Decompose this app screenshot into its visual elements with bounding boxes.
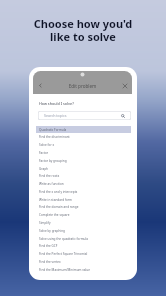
staticText: Factor: [39, 151, 49, 155]
button[interactable]: Find the domain and range: [33, 203, 132, 211]
staticText: Find the GCF: [39, 244, 58, 248]
button[interactable]: Solve using the quadratic formula: [33, 235, 132, 243]
button[interactable]: Find the x and y intercepts: [33, 188, 132, 196]
button[interactable]: Simplify: [33, 219, 132, 227]
button[interactable]: Solve for x: [33, 141, 132, 149]
button[interactable]: Back: [33, 81, 47, 90]
button[interactable]: Solve by graphing: [33, 227, 132, 235]
staticText: Find the roots: [39, 174, 60, 178]
staticText: Find the Perfect Square Trinomial: [39, 252, 88, 256]
button[interactable]: Write as function: [33, 180, 132, 188]
staticText: Edit problem: [47, 83, 118, 89]
button[interactable]: Find the discriminant: [33, 133, 132, 141]
staticText: Find the vertex: [39, 260, 61, 264]
staticText: Find the x and y intercepts: [39, 190, 78, 194]
staticText: Search topics: [44, 113, 67, 118]
button[interactable]: Complete the square: [33, 211, 132, 219]
button[interactable]: Close: [118, 81, 132, 90]
staticText: Write as function: [39, 182, 64, 186]
staticText: Solve by graphing: [39, 229, 65, 233]
staticText: How should I solve?: [39, 101, 74, 106]
button[interactable]: Find the GCF: [33, 242, 132, 250]
button[interactable]: Find the vertex: [33, 258, 132, 266]
staticText: Find the Maximum/Minimum value: [39, 268, 91, 272]
button[interactable]: Find the Perfect Square Trinomial: [33, 250, 132, 258]
button[interactable]: Quadratic Formula: [33, 126, 132, 134]
staticText: Quadratic Formula: [39, 128, 67, 132]
button[interactable]: Factor: [33, 149, 132, 157]
staticText: Graph: [39, 167, 49, 171]
button[interactable]: Write in standard form: [33, 196, 132, 204]
staticText: Write in standard form: [39, 198, 73, 202]
staticText: Simplify: [39, 221, 51, 225]
staticText: Factor by grouping: [39, 159, 67, 163]
button[interactable]: Search topics: [38, 111, 131, 120]
staticText: Choose how you'd like to solve: [0, 16, 166, 45]
staticText: Solve using the quadratic formula: [39, 237, 89, 241]
button[interactable]: Find the roots: [33, 172, 132, 180]
button[interactable]: Find the Maximum/Minimum value: [33, 266, 132, 274]
button[interactable]: [36, 126, 131, 133]
staticText: Find the discriminant: [39, 135, 70, 139]
button[interactable]: Factor by grouping: [33, 157, 132, 165]
staticText: Complete the square: [39, 213, 70, 217]
staticText: Solve for x: [39, 143, 55, 147]
staticText: Find the domain and range: [39, 205, 79, 209]
button[interactable]: Graph: [33, 165, 132, 173]
